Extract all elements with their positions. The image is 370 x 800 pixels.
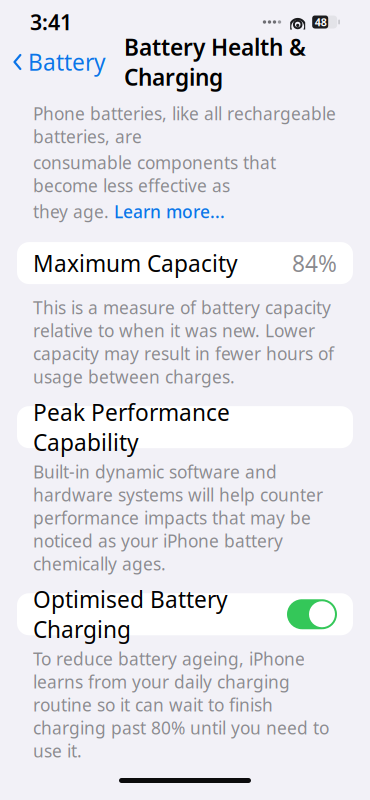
staticText: Peak Performance Capability xyxy=(33,397,230,457)
button[interactable]: Learn more... xyxy=(114,200,225,223)
staticText: Maximum Capacity xyxy=(33,248,238,278)
staticText: Learn more... xyxy=(114,200,225,223)
staticText: consumable components that become less e… xyxy=(33,151,276,197)
button[interactable]: Battery xyxy=(12,41,112,83)
staticText: Phone batteries, like all rechargeable b… xyxy=(33,102,336,148)
staticText: 3:41 xyxy=(30,8,72,36)
button[interactable]: Peak Performance Capability xyxy=(17,406,353,448)
staticText: Battery Health & Charging xyxy=(124,32,306,92)
staticText: 48 xyxy=(315,15,327,29)
staticText: Built-in dynamic software and hardware s… xyxy=(33,460,323,575)
button[interactable]: Maximum Capacity xyxy=(17,242,353,284)
staticText: they age. xyxy=(33,200,114,223)
staticText: This is a measure of battery capacity re… xyxy=(33,296,334,388)
staticText: Battery xyxy=(28,47,106,77)
staticText: 84% xyxy=(292,248,337,278)
button[interactable]: Optimised Battery Charging xyxy=(17,593,353,635)
staticText: Optimised Battery Charging xyxy=(33,584,228,644)
staticText: To reduce battery ageing, iPhone learns … xyxy=(33,647,329,762)
